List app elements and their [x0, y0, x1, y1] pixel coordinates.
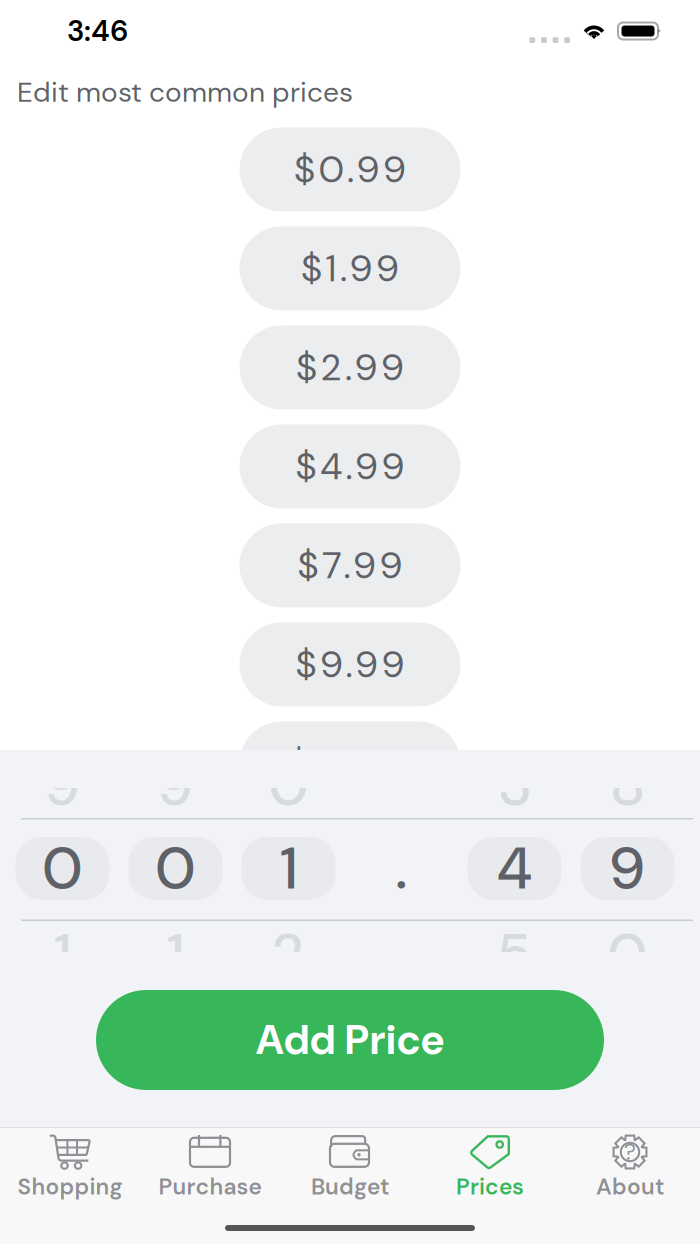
staticText: 0 [607, 917, 647, 993]
staticText: 1 [280, 830, 296, 907]
staticText: 0 [268, 747, 308, 823]
staticText: $2.99 [296, 343, 404, 392]
staticText: $7.99 [297, 541, 402, 590]
staticText: Prices [456, 1172, 524, 1201]
staticText: 1 [54, 917, 70, 993]
button[interactable]: $1.99 [239, 226, 460, 310]
button[interactable]: $19.99 [239, 820, 460, 904]
button[interactable]: $4.99 [239, 424, 460, 508]
button[interactable]: Shopping [0, 1128, 140, 1206]
staticText: $14.99 [288, 739, 412, 788]
staticText: $19.99 [288, 838, 412, 887]
button[interactable]: Prices [420, 1128, 560, 1206]
staticText: 5 [498, 917, 530, 993]
staticText: 1 [167, 917, 183, 993]
staticText: 3:46 [67, 12, 129, 50]
staticText: . [395, 830, 407, 907]
staticText: 3 [498, 747, 530, 823]
staticText: 4 [497, 830, 532, 907]
button[interactable]: Budget [280, 1128, 420, 1206]
staticText: $1.99 [301, 244, 399, 293]
button[interactable]: $7.99 [239, 523, 460, 607]
staticText: 9 [45, 747, 79, 823]
staticText: Budget [311, 1172, 389, 1201]
staticText: ? [624, 1137, 636, 1167]
staticText: 9 [158, 747, 192, 823]
staticText: $9.99 [295, 640, 404, 689]
staticText: 0 [155, 830, 195, 907]
staticText: Shopping [17, 1172, 122, 1201]
staticText: 2 [273, 917, 304, 993]
staticText: $0.99 [294, 145, 406, 194]
button[interactable]: Add Price [96, 990, 604, 1090]
staticText: $4.99 [295, 442, 404, 491]
staticText: 9 [610, 830, 644, 907]
button[interactable]: $9.99 [239, 622, 460, 706]
staticText: Add Price [255, 1013, 444, 1067]
button[interactable]: $2.99 [239, 325, 460, 409]
staticText: Purchase [158, 1172, 261, 1201]
button[interactable]: ? [560, 1128, 700, 1206]
staticText: 0 [42, 830, 82, 907]
staticText: 8 [611, 747, 644, 823]
button[interactable]: Purchase [140, 1128, 280, 1206]
button[interactable]: $14.99 [239, 721, 460, 805]
staticText: About [596, 1172, 664, 1201]
staticText: Edit most common prices [17, 74, 353, 110]
button[interactable]: $0.99 [239, 127, 460, 211]
